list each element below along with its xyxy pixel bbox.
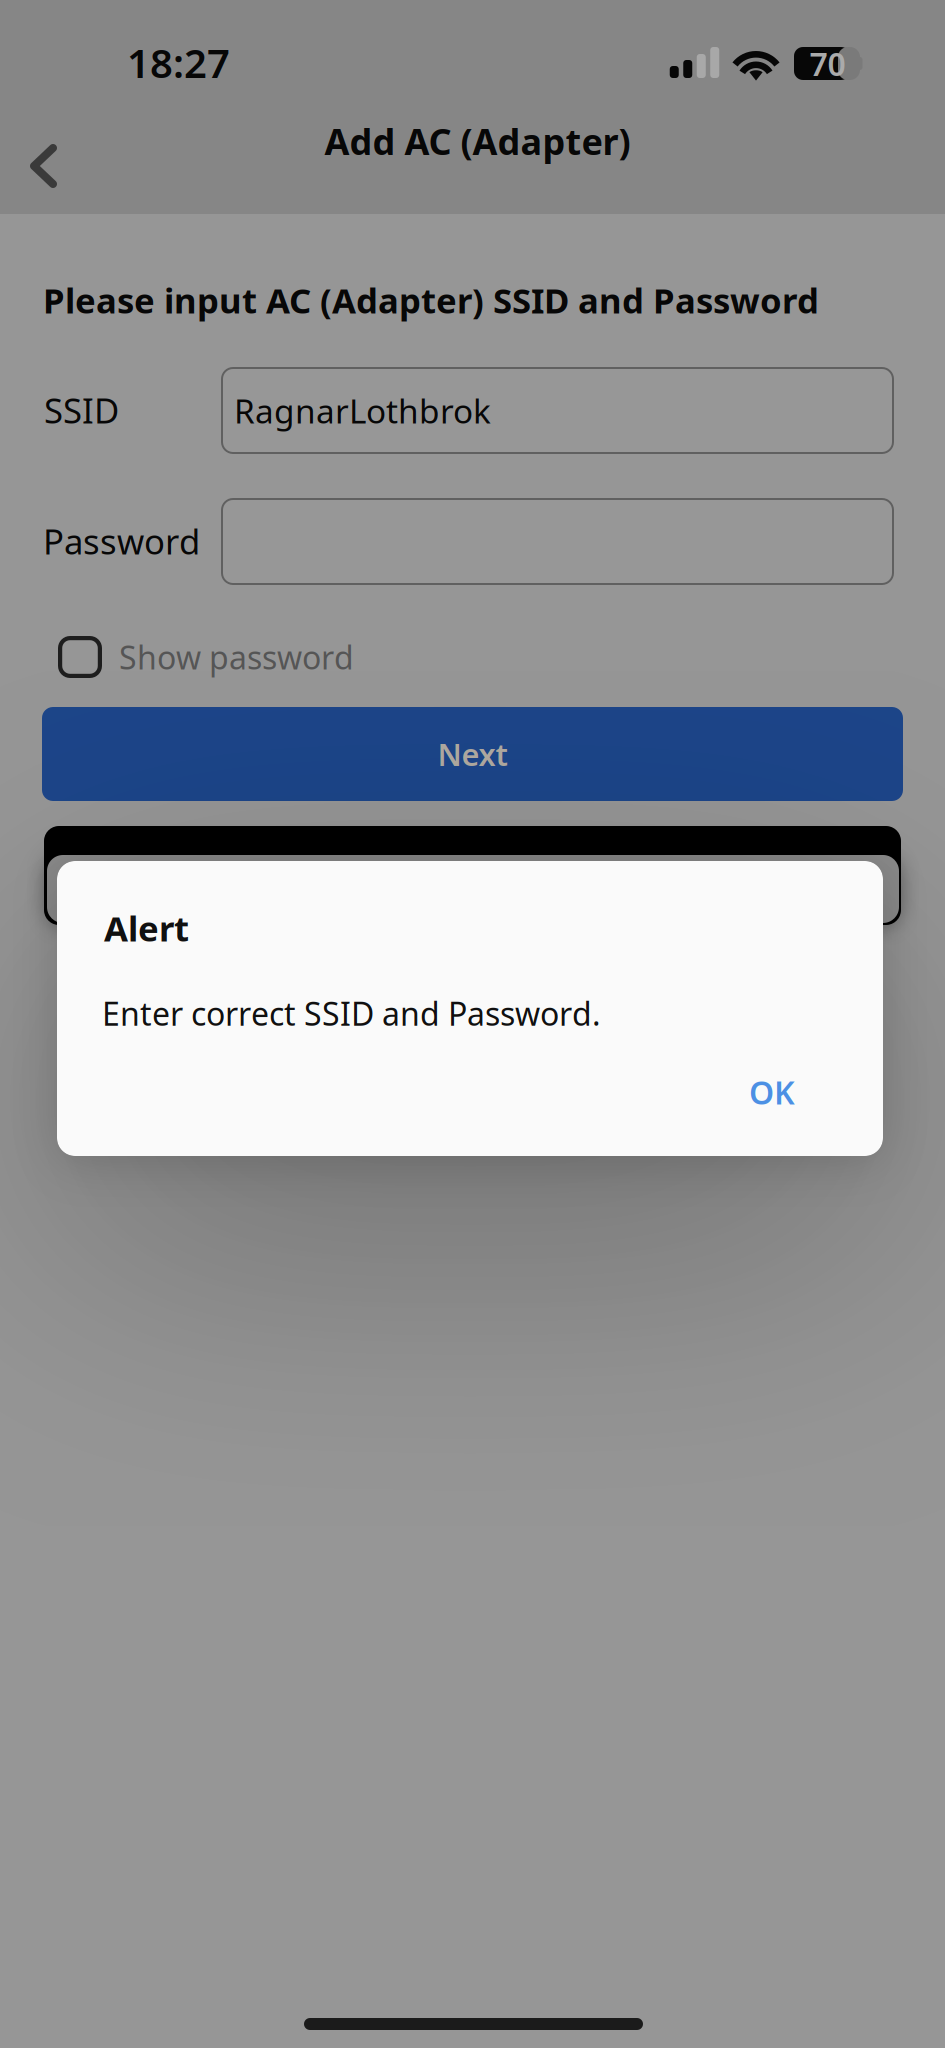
staticText: OK [749, 1071, 795, 1113]
button[interactable]: Secondary action [44, 826, 901, 925]
button[interactable]: Show password [58, 627, 488, 687]
staticText: SSID [44, 387, 119, 433]
button[interactable]: Next [42, 707, 903, 801]
staticText: Please input AC (Adapter) SSID and Passw… [43, 277, 819, 323]
staticText: 18:27 [127, 36, 230, 89]
staticText: Alert [104, 905, 189, 951]
staticText: Add AC (Adapter) [324, 117, 630, 165]
staticText: Next [437, 734, 507, 774]
staticText: Show password [119, 636, 354, 678]
staticText: RagnarLothbrok [234, 388, 491, 433]
staticText: Enter correct SSID and Password. [102, 992, 601, 1034]
button[interactable]: OK [718, 1056, 826, 1128]
staticText: Password [43, 518, 200, 564]
button[interactable]: Back [0, 128, 96, 204]
staticText: 70 [809, 42, 845, 85]
